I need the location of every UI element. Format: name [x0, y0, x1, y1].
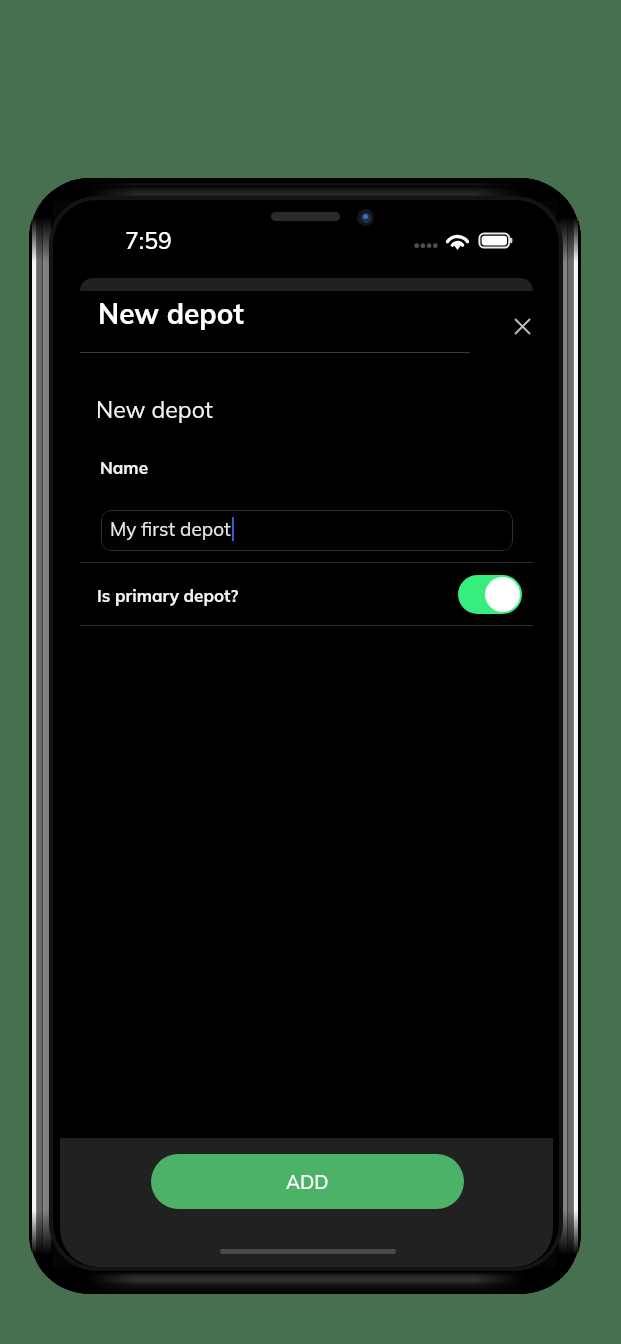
staticText: ADD: [286, 1170, 329, 1194]
staticText: Name: [100, 457, 148, 478]
staticText: 7:59: [125, 226, 172, 255]
staticText: My first depot: [110, 517, 231, 541]
staticText: New depot: [98, 296, 244, 331]
staticText: New depot: [96, 395, 213, 424]
button[interactable]: Close: [500, 304, 545, 349]
button[interactable]: My first depot: [101, 510, 513, 551]
button[interactable]: ADD: [151, 1154, 464, 1209]
button[interactable]: Is primary depot?: [80, 563, 533, 625]
staticText: Is primary depot?: [97, 585, 239, 606]
